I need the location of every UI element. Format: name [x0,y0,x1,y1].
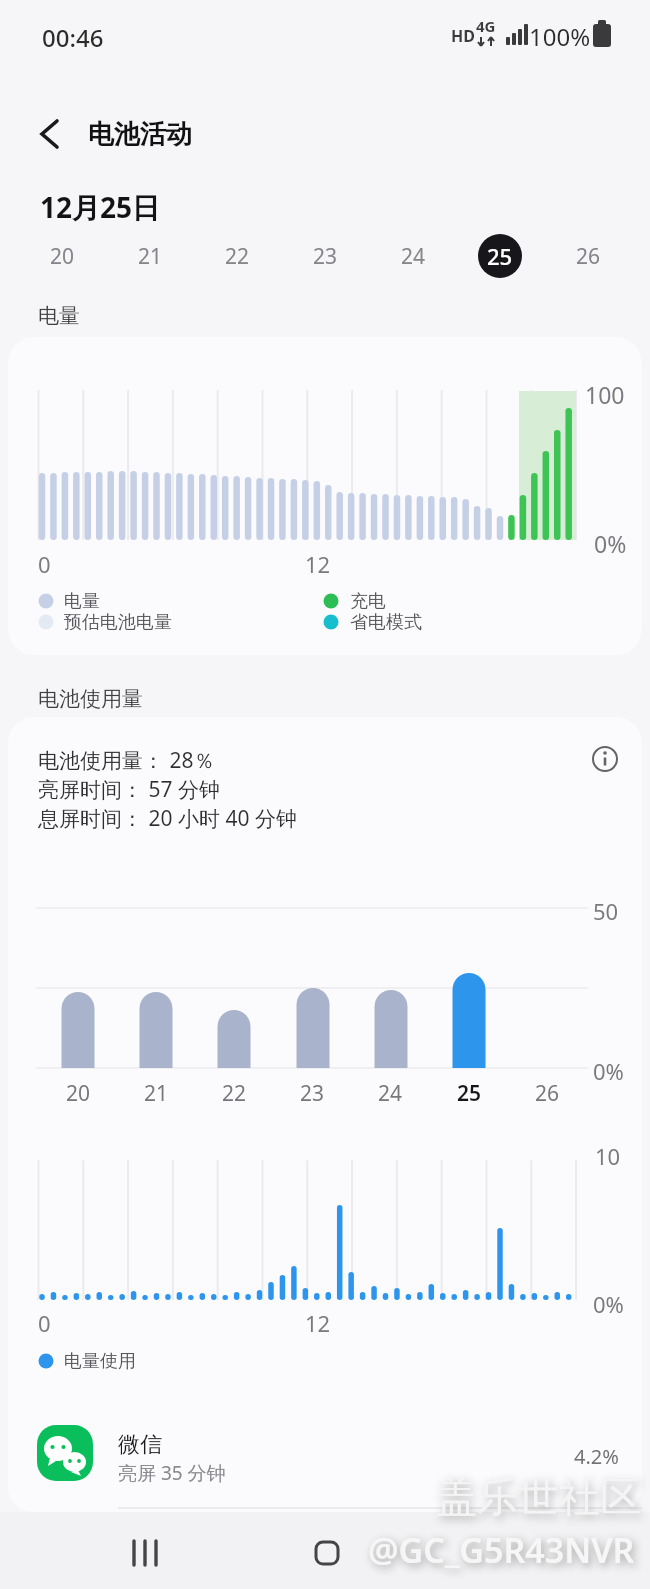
button[interactable]: 20 [40,234,84,278]
staticText: 20 [56,1079,100,1108]
button[interactable]: 21 [128,234,172,278]
button[interactable]: 22 [215,234,259,278]
button[interactable]: 25 [478,234,522,278]
staticText: 电量 [64,590,100,613]
staticText: HD [451,25,475,47]
button[interactable]: 23 [303,234,347,278]
staticText: 0% [593,1056,624,1086]
staticText: 亮屏 35 分钟 [118,1460,226,1486]
staticText: 23 [290,1079,334,1108]
staticText: 50 [593,896,619,926]
staticText: 息屏时间： 20 小时 40 分钟 [38,804,297,833]
staticText: 24 [368,1079,412,1108]
staticText: 20 [50,242,75,271]
staticText: 12月25日 [40,188,161,226]
staticText: 24 [401,242,426,271]
staticText: 22 [212,1079,256,1108]
staticText: 亮屏时间： 57 分钟 [38,775,220,804]
staticText: 23 [313,242,338,271]
staticText: 26 [525,1079,569,1108]
button[interactable]: 26 [566,234,610,278]
staticText: 充电 [350,590,386,613]
staticText: 26 [576,242,601,271]
staticText: 0 [38,549,51,579]
staticText: 25 [447,1079,491,1108]
staticText: 100% [529,20,591,53]
staticText: 22 [225,242,250,271]
staticText: 0 [38,1308,51,1338]
staticText: 0% [594,528,627,559]
staticText: 电池活动 [88,118,192,151]
staticText: 电池使用量 [38,686,143,712]
staticText: 预估电池电量 [64,611,172,634]
button[interactable] [585,739,625,779]
staticText: 微信 [118,1431,162,1459]
button[interactable] [115,1525,175,1581]
staticText: 12 [305,549,331,579]
staticText: 12 [305,1308,331,1338]
staticText: 盖乐世社区 [436,1472,641,1524]
staticText: 4G [476,16,496,36]
button[interactable] [297,1525,357,1581]
button[interactable] [8,1415,642,1505]
staticText: 21 [134,1079,178,1108]
staticText: 21 [138,242,163,271]
staticText: 电量使用 [64,1350,136,1373]
staticText: 100 [585,379,625,410]
staticText: 00:46 [42,21,104,54]
staticText: 电池使用量： 28％ [38,746,215,775]
staticText: 25 [487,241,513,271]
button[interactable] [30,112,74,156]
staticText: 省电模式 [350,611,422,634]
staticText: @GC_G5R43NVR [368,1527,635,1573]
button[interactable] [479,1525,539,1581]
staticText: 0% [593,1289,624,1319]
staticText: 电量 [38,303,80,329]
button[interactable]: 24 [391,234,435,278]
staticText: 4.2% [574,1443,619,1470]
staticText: 10 [595,1141,621,1171]
